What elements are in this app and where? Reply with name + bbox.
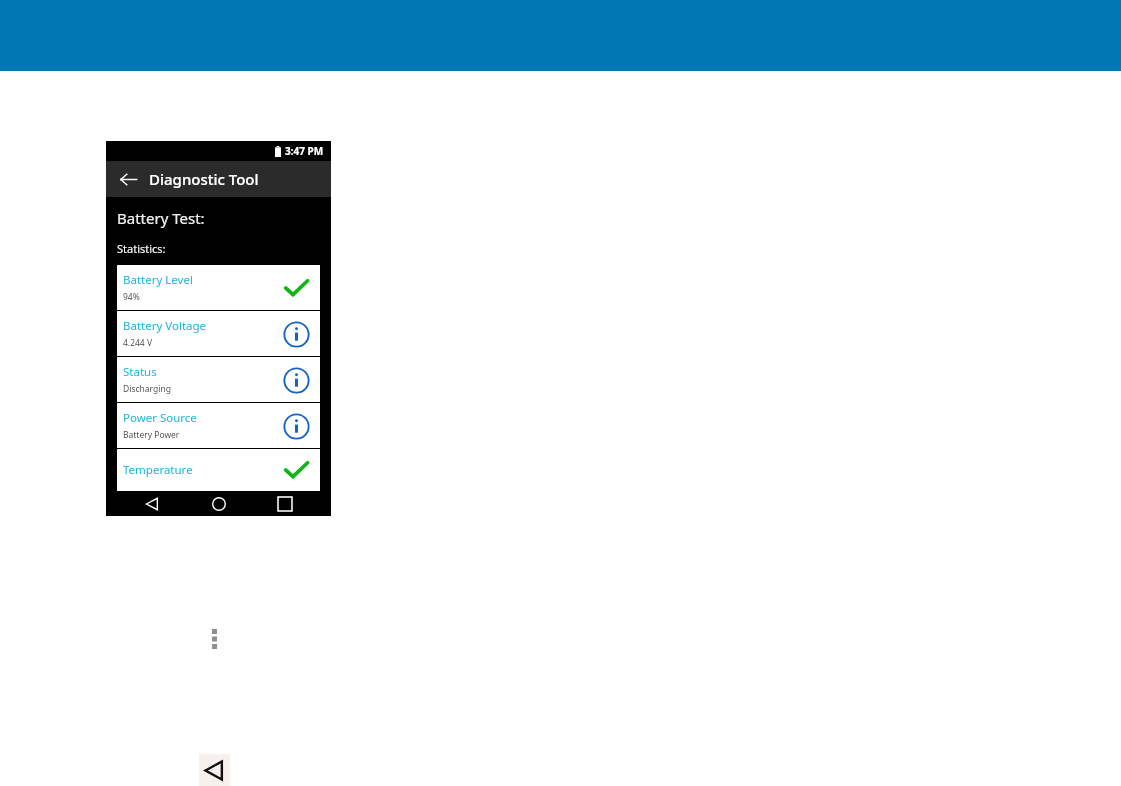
button[interactable]: Battery Level bbox=[117, 265, 320, 310]
staticText: 4.244 V bbox=[123, 337, 153, 349]
staticText: Discharging bbox=[123, 383, 171, 395]
staticText: 94% bbox=[123, 291, 140, 303]
staticText: Power Source bbox=[123, 410, 197, 426]
button[interactable]: Navigate up bbox=[116, 167, 140, 191]
button[interactable]: Back bbox=[131, 491, 173, 516]
button[interactable]: Back bbox=[199, 754, 230, 786]
button[interactable]: Power Source bbox=[117, 403, 320, 448]
button[interactable]: Status bbox=[117, 357, 320, 402]
staticText: Statistics: bbox=[117, 241, 166, 256]
button[interactable]: Battery Voltage bbox=[117, 311, 320, 356]
staticText: Battery Test: bbox=[117, 208, 205, 228]
button[interactable]: Temperature bbox=[117, 449, 320, 491]
staticText: Diagnostic Tool bbox=[149, 169, 259, 189]
staticText: Status bbox=[123, 364, 157, 380]
button[interactable]: Recent apps bbox=[264, 491, 306, 516]
staticText: 3:47 PM bbox=[285, 144, 324, 158]
staticText: Temperature bbox=[123, 462, 193, 478]
staticText: Battery Voltage bbox=[123, 318, 207, 334]
staticText: Battery Level bbox=[123, 272, 193, 288]
button[interactable]: More options bbox=[204, 625, 224, 653]
staticText: Battery Power bbox=[123, 429, 180, 441]
button[interactable]: Home bbox=[198, 491, 240, 516]
